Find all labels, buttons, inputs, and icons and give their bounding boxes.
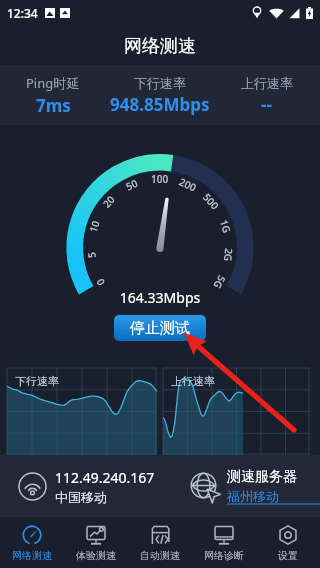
staticText: Ping时延 [26, 74, 80, 92]
staticText: 网络测速 [12, 549, 52, 562]
staticText: 中国移动 [55, 489, 107, 505]
staticText: 网络诊断 [204, 549, 244, 562]
button[interactable]: 停止测试 [114, 315, 206, 341]
button[interactable]: 自动测速 [128, 517, 192, 568]
staticText: 上行速率 [241, 75, 293, 91]
staticText: 体验测速 [76, 549, 116, 562]
staticText: 164.33Mbps [0, 288, 320, 307]
staticText: 自动测速 [140, 549, 180, 562]
staticText: 下行速率 [15, 374, 59, 388]
button[interactable]: 体验测速 [64, 517, 128, 568]
staticText: 停止测试 [130, 319, 190, 338]
button[interactable]: 网络诊断 [192, 517, 256, 568]
staticText: 7ms [36, 94, 71, 117]
staticText: 下行速率 [134, 75, 186, 91]
button[interactable]: 112.49.240.167 [0, 455, 172, 517]
button[interactable]: 测速服务器 [172, 455, 320, 517]
staticText: 上行速率 [171, 374, 215, 388]
staticText: 112.49.240.167 [55, 468, 155, 487]
staticText: 948.85Mbps [110, 93, 210, 116]
button[interactable]: 网络测速 [0, 517, 64, 568]
staticText: -- [261, 93, 272, 116]
staticText: 12:34 [7, 5, 38, 21]
button[interactable]: 设置 [256, 517, 320, 568]
staticText: 设置 [278, 549, 298, 562]
staticText: 测速服务器 [227, 468, 297, 486]
staticText: 福州移动 [227, 488, 279, 504]
staticText: 网络测速 [124, 35, 196, 58]
